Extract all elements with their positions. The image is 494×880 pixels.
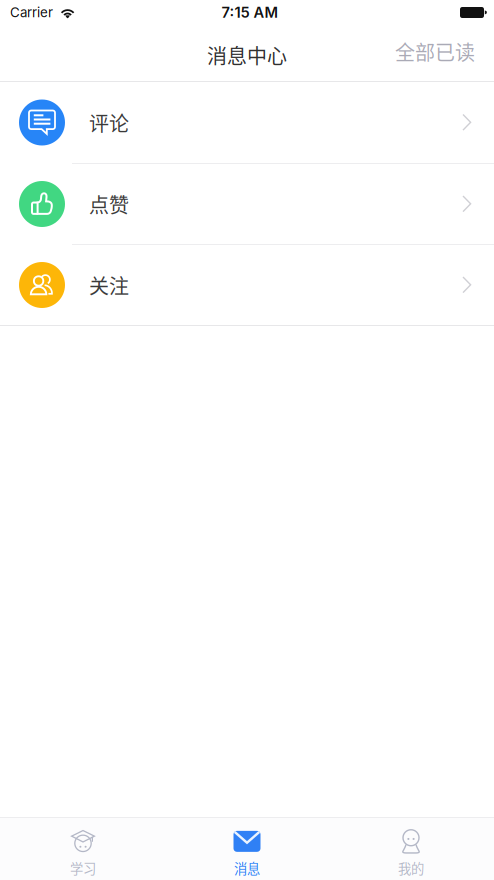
- button[interactable]: 评论: [0, 82, 494, 163]
- staticText: 点赞: [89, 189, 129, 218]
- staticText: 全部已读: [395, 37, 475, 66]
- staticText: 7:15 AM: [221, 4, 278, 21]
- button[interactable]: 点赞: [0, 164, 494, 244]
- staticText: Carrier: [10, 4, 53, 20]
- button[interactable]: 学习: [1, 818, 165, 880]
- staticText: 消息: [234, 858, 260, 878]
- staticText: 消息中心: [207, 40, 287, 69]
- staticText: 学习: [70, 858, 96, 878]
- staticText: 评论: [89, 108, 129, 137]
- staticText: 关注: [89, 270, 129, 299]
- button[interactable]: 我的: [329, 818, 493, 880]
- staticText: 我的: [398, 858, 424, 878]
- button[interactable]: 消息: [165, 818, 329, 880]
- button[interactable]: 关注: [0, 245, 494, 325]
- button[interactable]: 全部已读: [385, 27, 485, 75]
